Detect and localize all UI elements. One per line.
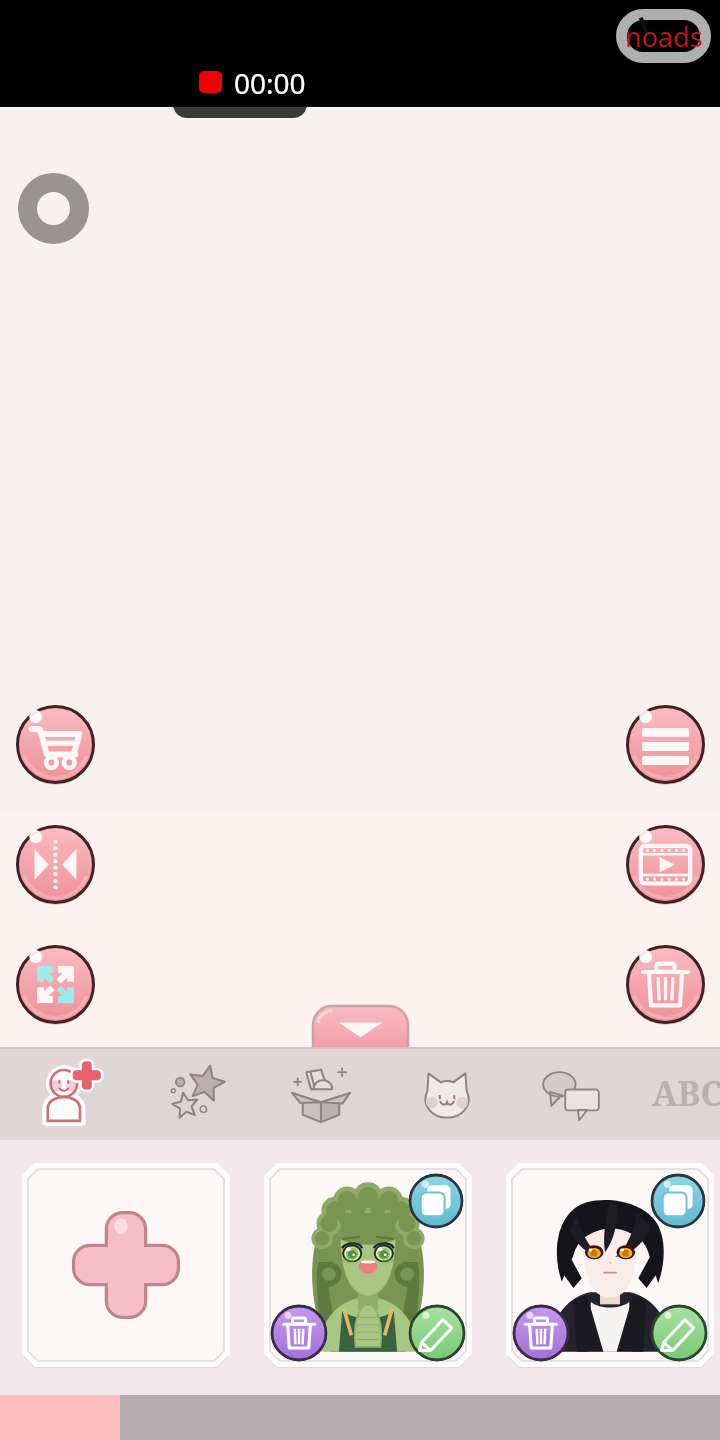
button[interactable]: Collapse panel — [313, 1006, 408, 1047]
button[interactable]: Duplicate — [650, 1173, 706, 1229]
button[interactable]: Flip horizontally — [15, 824, 96, 905]
staticText: 00:00 — [234, 64, 306, 102]
button[interactable]: Speech — [528, 1057, 614, 1129]
button[interactable]: Pets — [404, 1057, 490, 1129]
button[interactable]: Text — [652, 1059, 720, 1127]
button[interactable]: Delete — [270, 1304, 328, 1362]
button[interactable]: Duplicate — [408, 1173, 464, 1229]
button[interactable]: Delete — [625, 944, 706, 1025]
button[interactable]: Character — [28, 1057, 114, 1129]
button[interactable]: Edit — [650, 1304, 708, 1362]
button[interactable]: Menu — [625, 704, 706, 785]
button[interactable]: Character 2 — [506, 1163, 714, 1367]
button[interactable]: Delete — [512, 1304, 570, 1362]
button[interactable]: Effects — [154, 1057, 240, 1129]
staticText: ABC — [652, 1070, 720, 1116]
button[interactable]: Edit — [408, 1304, 466, 1362]
button[interactable]: Remove ads — [616, 9, 711, 63]
button[interactable]: Items — [278, 1057, 364, 1129]
button[interactable]: Character 1 — [264, 1163, 472, 1367]
button[interactable]: Selection handle — [18, 173, 89, 244]
button[interactable]: Resize — [15, 944, 96, 1025]
button[interactable]: Add new character — [22, 1163, 230, 1367]
staticText: noads — [625, 18, 703, 55]
button[interactable]: Shop — [15, 704, 96, 785]
button[interactable]: Animation — [625, 824, 706, 905]
